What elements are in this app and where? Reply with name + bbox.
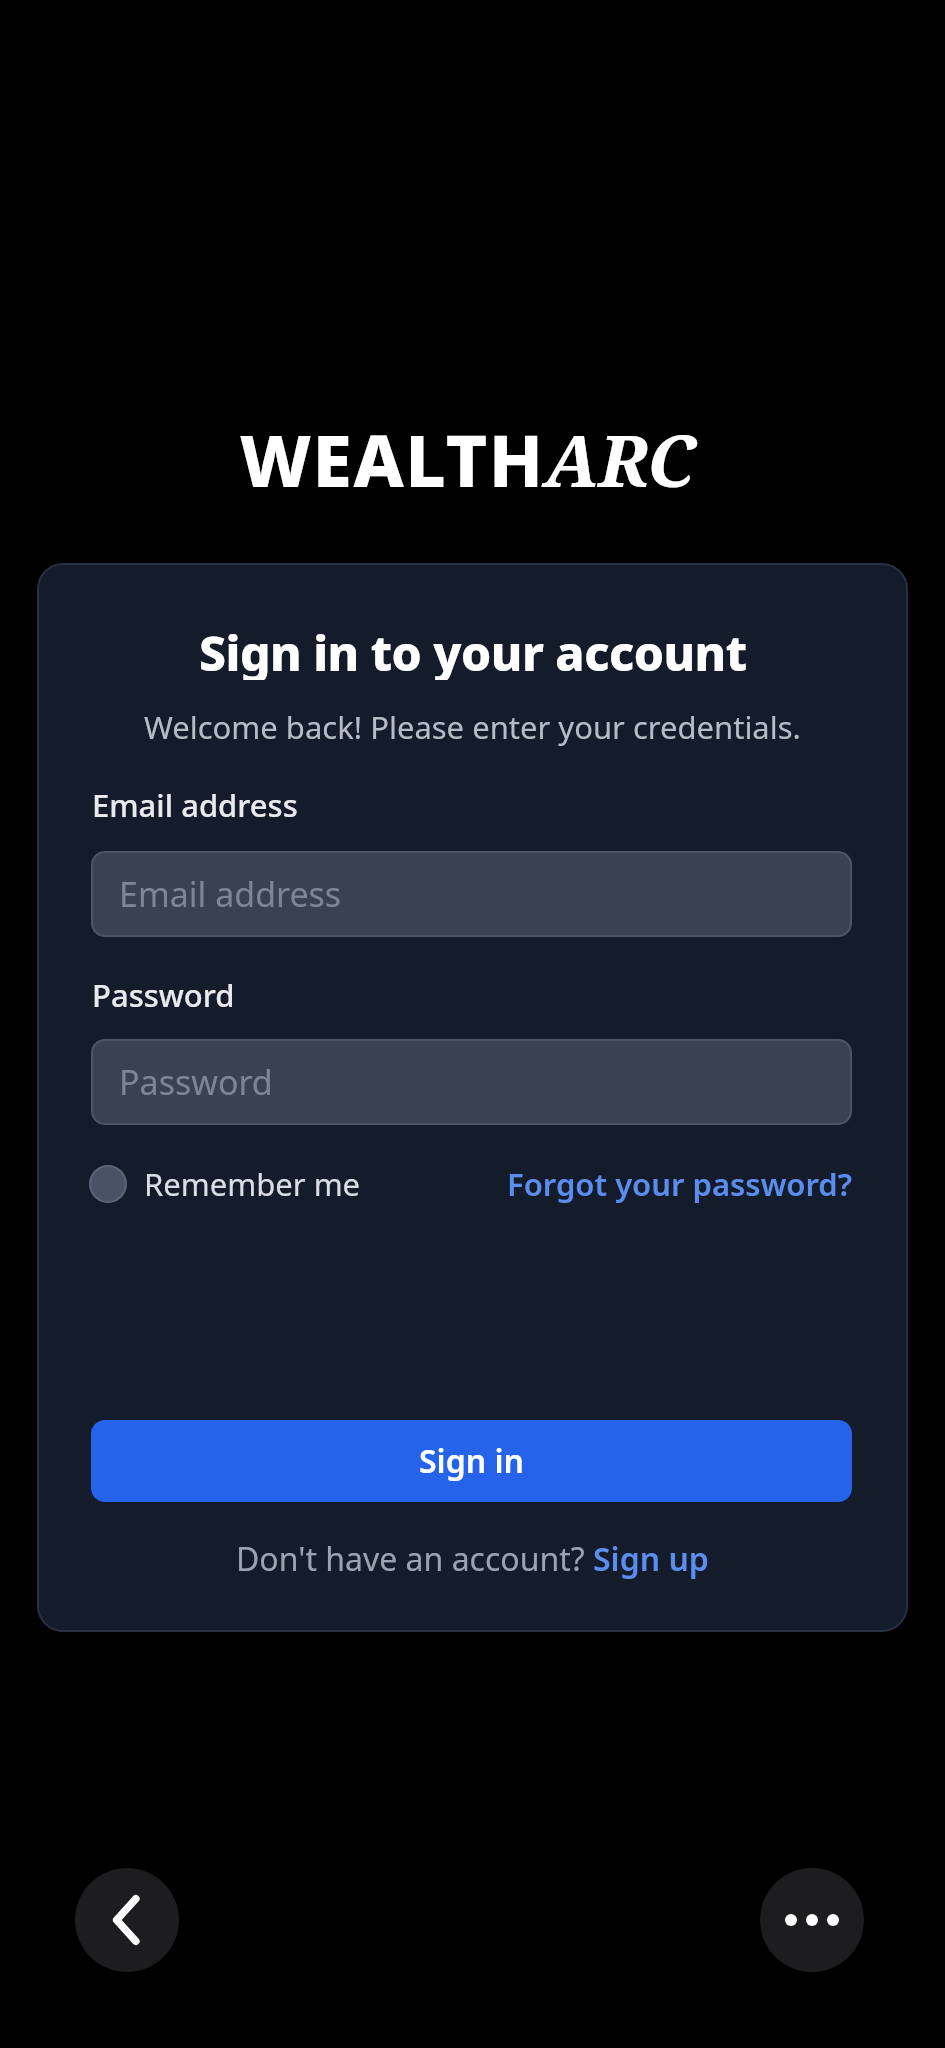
staticText: Sign in (419, 1439, 524, 1483)
button[interactable]: Sign in (91, 1420, 852, 1502)
button[interactable]: Forgot your password? (507, 1163, 853, 1205)
button[interactable]: Remember me (89, 1159, 361, 1209)
button[interactable] (760, 1868, 864, 1972)
staticText: Email address (92, 784, 298, 826)
staticText: Sign in to your account (199, 620, 747, 680)
button[interactable]: Don't have an account? Sign up (37, 1535, 908, 1583)
staticText: Email address (119, 871, 342, 917)
staticText: Welcome back! Please enter your credenti… (144, 706, 801, 748)
staticText: Password (119, 1059, 273, 1105)
staticText: ARC (545, 411, 695, 508)
staticText: WEALTH (240, 411, 545, 508)
button[interactable]: Password (91, 1039, 852, 1125)
staticText: Don't have an account? Sign up (236, 1537, 709, 1581)
staticText: Password (92, 974, 235, 1016)
staticText: Remember me (144, 1163, 361, 1205)
button[interactable]: Email address (91, 851, 852, 937)
button[interactable] (75, 1868, 179, 1972)
